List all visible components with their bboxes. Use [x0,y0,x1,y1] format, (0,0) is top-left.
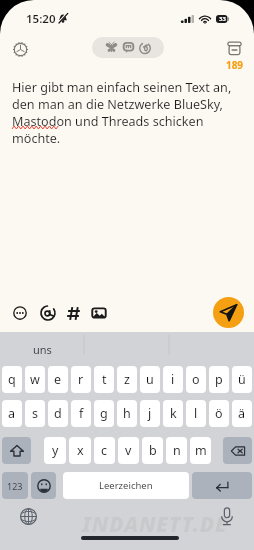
staticText: a [8,405,16,422]
button[interactable]: q [2,366,22,393]
staticText: k [170,405,177,422]
button[interactable]: k [163,400,183,427]
staticText: t [102,371,107,388]
button[interactable]: Archive [220,38,249,74]
button[interactable]: Select networks [92,37,164,58]
staticText: e [54,371,62,388]
button[interactable]: Settings [9,38,32,61]
staticText: Leerzeichen [99,479,153,492]
staticText: z [124,371,130,388]
staticText: x [77,442,84,459]
button[interactable]: a [2,400,22,427]
button[interactable]: x [69,437,91,464]
staticText: 15:20 [26,11,56,27]
button[interactable]: Send post [213,297,244,328]
button[interactable]: z [117,366,137,393]
button[interactable]: o [186,366,206,393]
button[interactable]: s [25,400,45,427]
staticText: n [173,442,181,459]
staticText: ü [238,371,246,388]
button[interactable]: 123 [2,472,28,499]
staticText: d [54,405,62,422]
staticText: 123 [7,480,23,492]
staticText: m [195,442,207,459]
staticText: p [215,371,223,388]
staticText: f [79,405,84,422]
button[interactable]: h [117,400,137,427]
staticText: c [101,442,108,459]
button[interactable]: y [44,437,66,464]
button[interactable]: Return [192,472,252,499]
staticText: y [52,442,59,459]
button[interactable]: Change keyboard language [19,507,38,526]
staticText: o [192,371,200,388]
button[interactable]: b [142,437,163,464]
staticText: h [123,405,131,422]
button[interactable]: p [209,366,229,393]
staticText: 33 [219,15,226,23]
button[interactable]: d [48,400,68,427]
button[interactable]: g [94,400,114,427]
staticText: i [171,371,175,388]
staticText: u [146,371,154,388]
staticText: g [100,405,108,422]
button[interactable]: Shift [2,437,31,464]
staticText: l [194,405,198,422]
staticText: q [8,371,16,388]
button[interactable]: Add image [91,305,107,321]
button[interactable]: ö [209,400,229,427]
button[interactable]: Emoji keyboard [31,472,56,499]
button[interactable]: i [163,366,183,393]
button[interactable]: Emoji [12,305,28,321]
button[interactable]: v [118,437,139,464]
button[interactable]: Backspace [223,437,252,464]
staticText: v [125,442,132,459]
button[interactable]: n [166,437,187,464]
staticText: ä [238,405,246,422]
button[interactable]: t [94,366,114,393]
button[interactable]: Dictate [217,507,236,526]
staticText: s [32,405,38,422]
staticText: j [148,405,152,422]
button[interactable]: r [71,366,91,393]
staticText: w [30,371,40,388]
button[interactable]: ä [232,400,252,427]
staticText: r [78,371,84,388]
button[interactable]: f [71,400,91,427]
button[interactable]: e [48,366,68,393]
button[interactable]: m [190,437,211,464]
button[interactable]: u [140,366,160,393]
button[interactable]: c [94,437,115,464]
staticText: ö [215,405,223,422]
button[interactable]: ü [232,366,252,393]
button[interactable]: l [186,400,206,427]
button[interactable]: Mention someone [39,304,56,321]
button[interactable]: j [140,400,160,427]
staticText: b [149,442,157,459]
button[interactable]: Add hashtag [65,305,81,321]
button[interactable]: w [25,366,45,393]
staticText: Hier gibt man einfach seinen Text an, de… [12,79,242,147]
staticText: 189 [220,58,249,72]
staticText: uns [33,342,52,357]
staticText: INDANETT.DE [82,510,228,539]
button[interactable]: Leerzeichen [63,472,189,499]
